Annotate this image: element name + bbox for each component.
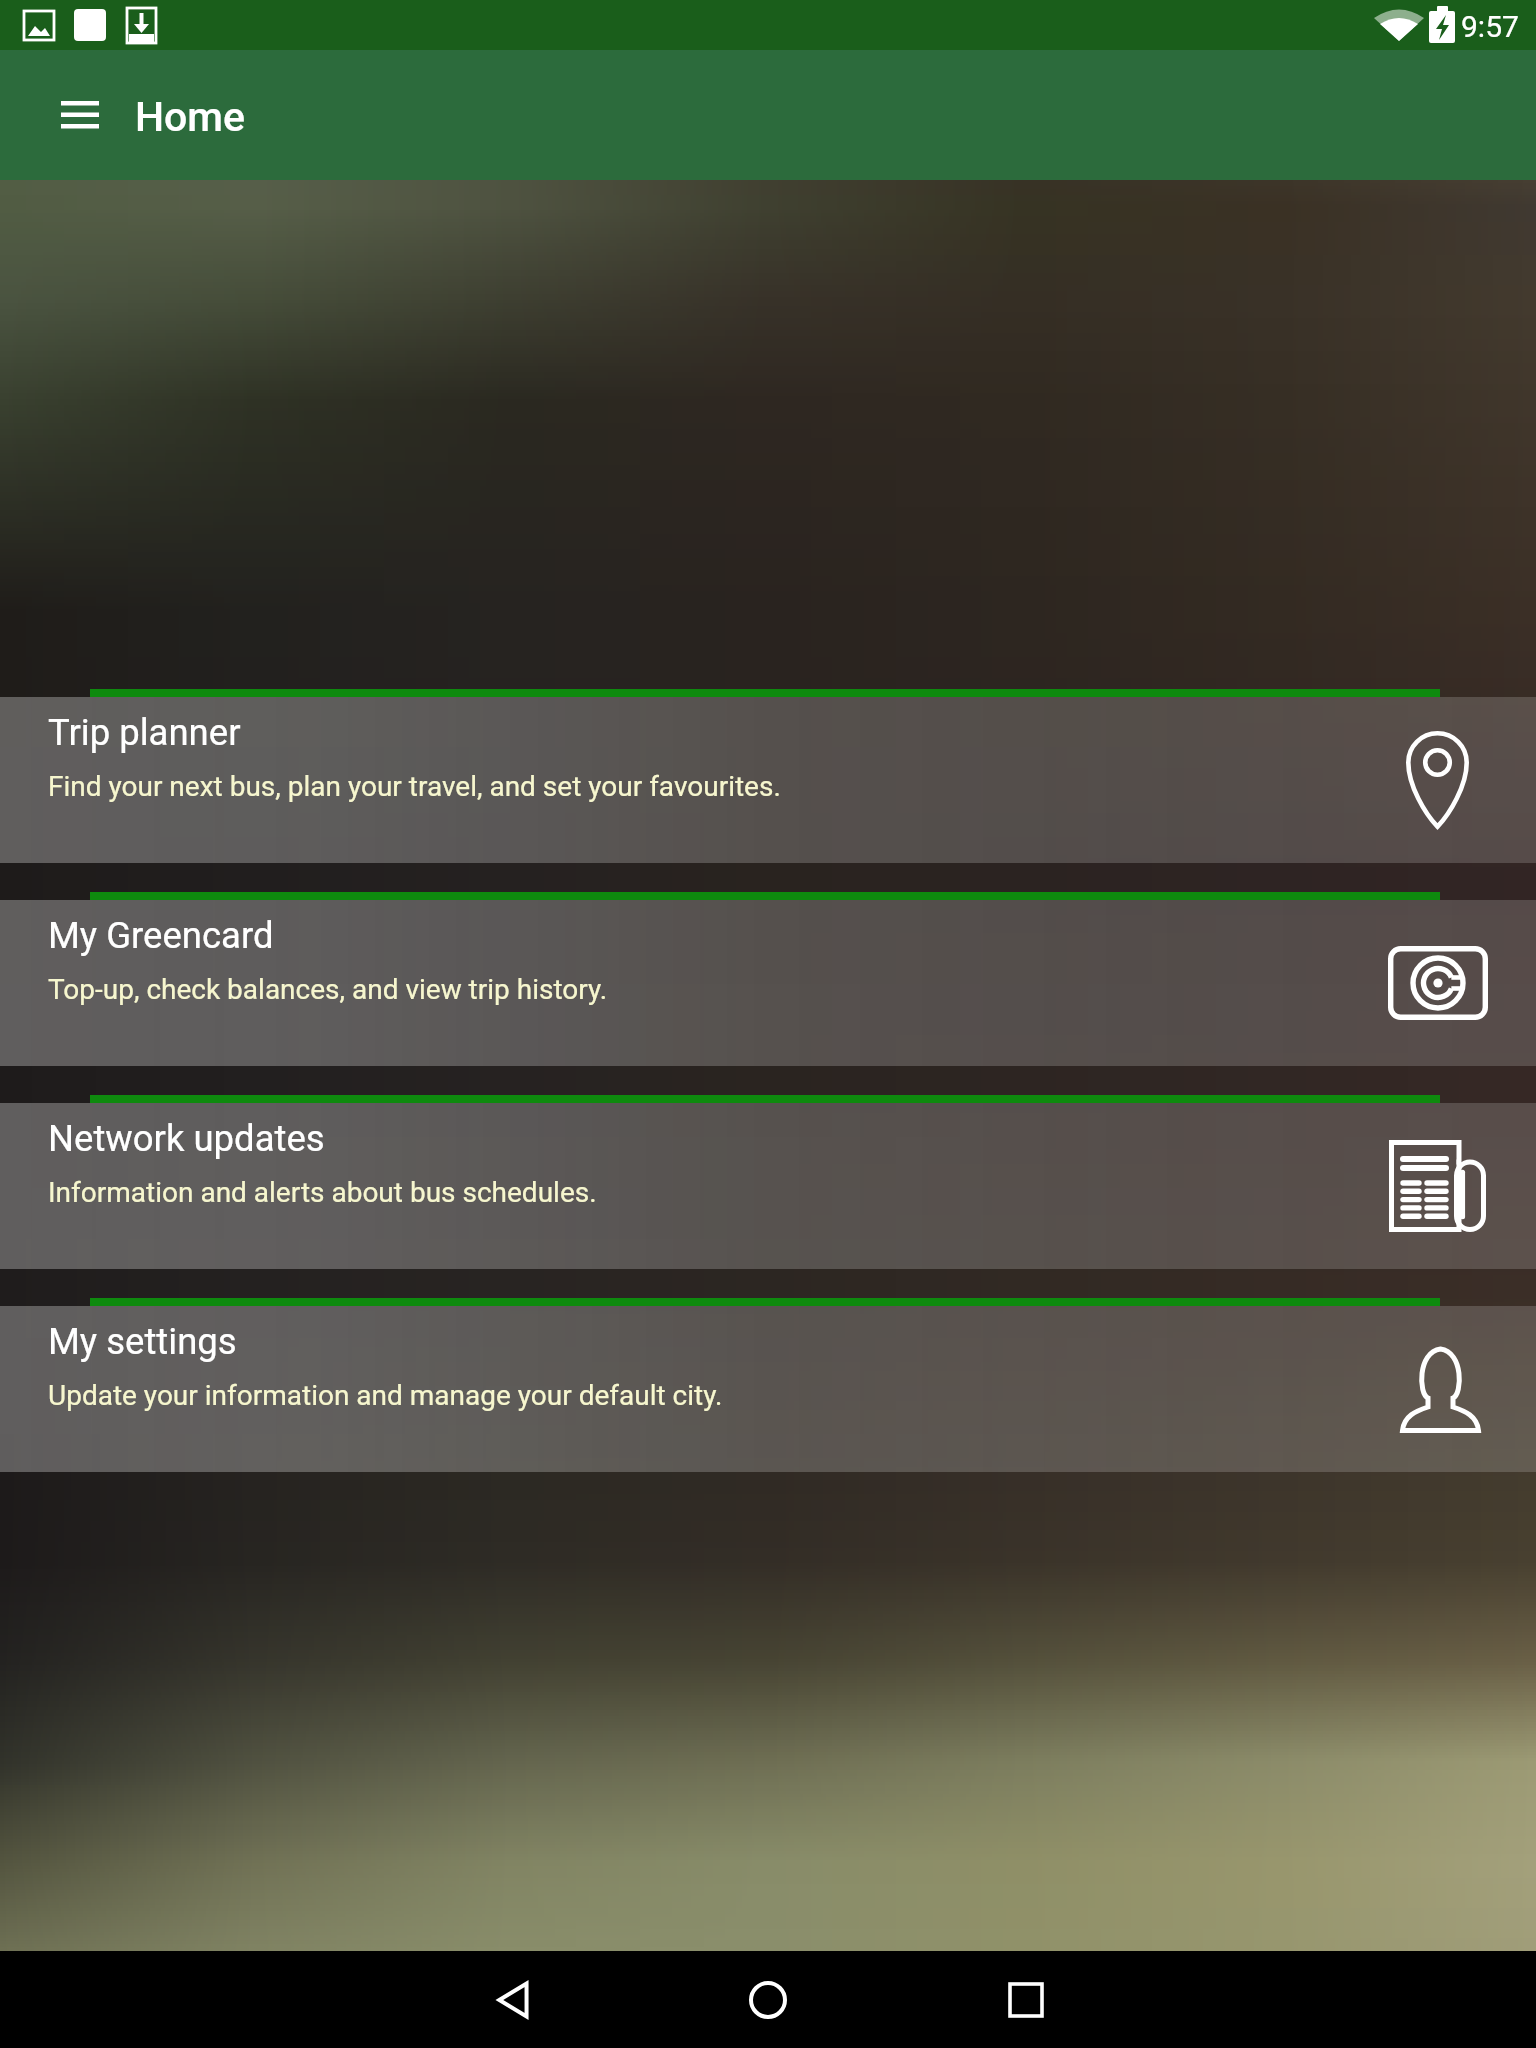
button[interactable]: Network updates xyxy=(0,1095,1536,1269)
staticText: Top-up, check balances, and view trip hi… xyxy=(48,973,608,1006)
staticText: My Greencard xyxy=(48,914,274,957)
button[interactable]: Recent apps xyxy=(986,1960,1066,2040)
staticText: 9:57 xyxy=(1461,9,1519,44)
staticText: Network updates xyxy=(48,1117,325,1160)
button[interactable]: Back xyxy=(475,1960,555,2040)
staticText: Update your information and manage your … xyxy=(48,1379,723,1412)
staticText: Find your next bus, plan your travel, an… xyxy=(48,770,781,803)
staticText: Information and alerts about bus schedul… xyxy=(48,1176,597,1209)
button[interactable]: Home xyxy=(728,1960,808,2040)
staticText: Trip planner xyxy=(48,711,241,754)
button[interactable]: Trip planner xyxy=(0,689,1536,863)
button[interactable]: Open navigation drawer xyxy=(32,67,128,163)
button[interactable]: My settings xyxy=(0,1298,1536,1472)
button[interactable]: My Greencard xyxy=(0,892,1536,1066)
staticText: Home xyxy=(135,93,246,141)
staticText: My settings xyxy=(48,1320,237,1363)
